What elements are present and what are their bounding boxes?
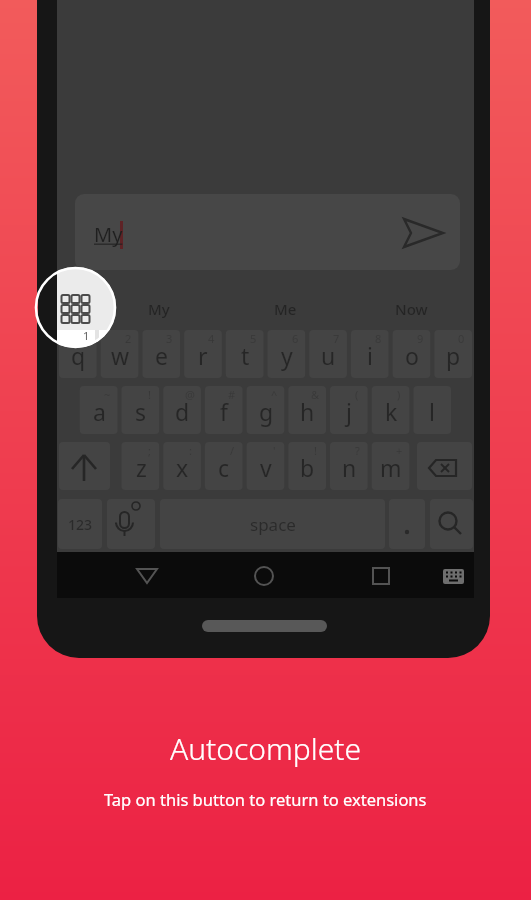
staticText: g	[259, 396, 274, 427]
staticText: f	[220, 396, 228, 427]
staticText: Autocomplete	[170, 728, 362, 768]
staticText: r	[198, 340, 208, 371]
staticText: 1	[83, 328, 90, 343]
staticText: space	[250, 513, 296, 536]
button[interactable]: 1	[35, 267, 116, 348]
staticText: j	[346, 396, 352, 427]
staticText: 0	[458, 331, 465, 345]
staticText: q	[71, 340, 86, 371]
staticText: y	[281, 340, 293, 371]
staticText: w	[111, 340, 130, 371]
staticText: 9	[417, 331, 424, 345]
staticText: c	[218, 452, 230, 483]
staticText: 123	[68, 515, 93, 534]
staticText: b	[300, 452, 315, 483]
staticText: &	[311, 387, 320, 401]
staticText: #	[228, 387, 236, 401]
staticText: t	[241, 340, 250, 371]
staticText: d	[175, 396, 190, 427]
staticText: o	[405, 340, 419, 371]
staticText: Tap on this button to return to extensio…	[104, 788, 427, 810]
staticText: 4	[208, 331, 215, 345]
staticText: 2	[125, 331, 132, 345]
staticText: Me	[274, 299, 297, 319]
staticText: s	[135, 396, 147, 427]
staticText: 1	[83, 331, 90, 345]
staticText: h	[300, 396, 315, 427]
staticText: 6	[292, 331, 299, 345]
staticText: k	[385, 396, 398, 427]
staticText: i	[367, 340, 373, 371]
staticText: n	[342, 452, 357, 483]
staticText: v	[260, 452, 272, 483]
staticText: 8	[375, 331, 382, 345]
staticText: !	[314, 443, 317, 457]
staticText: u	[321, 340, 336, 371]
staticText: p	[446, 340, 461, 371]
staticText: m	[380, 452, 402, 483]
staticText: !	[148, 387, 151, 401]
staticText: e	[155, 340, 168, 371]
staticText: z	[136, 452, 147, 483]
staticText: x	[176, 452, 189, 483]
staticText: a	[93, 396, 106, 427]
staticText: 5	[250, 331, 257, 345]
staticText: @	[185, 387, 195, 401]
staticText: Now	[395, 299, 428, 319]
staticText: l	[429, 396, 435, 427]
staticText: 7	[333, 331, 340, 345]
staticText: My	[94, 221, 123, 248]
staticText: My	[148, 299, 170, 319]
staticText: 3	[166, 331, 173, 345]
